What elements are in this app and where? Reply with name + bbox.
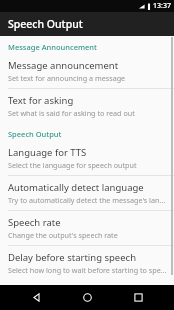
staticText: Text for asking — [8, 94, 74, 107]
staticText: Speech Output — [8, 17, 83, 31]
staticText: 13:37 — [153, 1, 171, 11]
button[interactable]: Speech rate — [0, 211, 174, 245]
staticText: Select the language for speech output — [8, 160, 137, 170]
staticText: Speech Output — [8, 129, 62, 139]
button[interactable]: Recent apps — [123, 285, 153, 310]
staticText: Message announcement — [8, 59, 119, 72]
button[interactable]: Back — [21, 285, 51, 310]
button[interactable]: Home — [72, 285, 102, 310]
button[interactable]: Delay before starting speech — [0, 246, 174, 280]
button[interactable]: Message announcement — [0, 54, 174, 88]
staticText: Language for TTS — [8, 146, 87, 159]
staticText: Set what is said for asking to read out — [8, 108, 135, 118]
staticText: Delay before starting speech — [8, 251, 137, 264]
staticText: Speech rate — [8, 216, 61, 229]
staticText: Message Announcement — [8, 42, 97, 52]
staticText: Set text for announcing a message — [8, 73, 126, 83]
staticText: Change the output's speech rate — [8, 230, 118, 240]
button[interactable]: Text for asking — [0, 89, 174, 123]
staticText: Try to automatically detect the message'… — [8, 195, 168, 205]
staticText: Select how long to wait before starting … — [8, 265, 168, 275]
button[interactable]: Automatically detect language — [0, 176, 174, 210]
button[interactable]: Language for TTS — [0, 141, 174, 175]
staticText: Automatically detect language — [8, 181, 144, 194]
